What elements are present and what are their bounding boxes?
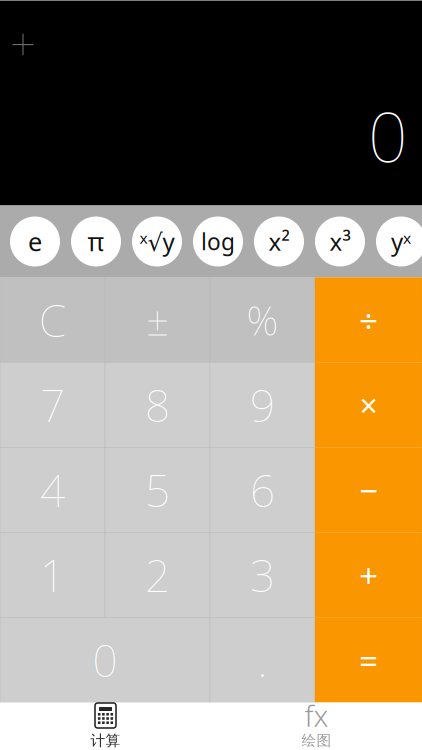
button[interactable]: π [71,216,121,266]
staticText: x² [268,226,289,257]
button[interactable]: log [193,216,243,266]
staticText: + [10,13,36,74]
staticText: ± [146,293,169,346]
staticText: = [359,638,378,682]
staticText: 5 [145,461,170,519]
button[interactable]: x² [254,216,304,266]
button[interactable]: yˣ [376,216,422,266]
button[interactable]: × [315,362,422,447]
staticText: fx [304,696,328,735]
button[interactable]: 6 [210,447,315,532]
button[interactable]: ± [105,277,210,362]
button[interactable]: ÷ [315,277,422,362]
button[interactable]: 计算 [0,702,211,749]
button[interactable]: 3 [210,532,315,617]
staticText: 9 [250,376,275,434]
button[interactable]: 5 [105,447,210,532]
button[interactable]: . [210,617,315,702]
staticText: 0 [368,89,408,181]
staticText: × [359,384,377,426]
staticText: 1 [40,546,65,604]
staticText: ÷ [359,298,378,342]
staticText: 0 [92,631,117,689]
staticText: yˣ [391,226,411,257]
staticText: log [201,226,235,256]
staticText: 4 [40,461,65,519]
button[interactable]: e [10,216,60,266]
button[interactable]: 9 [210,362,315,447]
staticText: 计算 [90,731,120,749]
button[interactable]: 7 [0,362,105,447]
staticText: x³ [329,226,350,257]
button[interactable]: − [315,447,422,532]
button[interactable]: % [210,277,315,362]
button[interactable]: 0 [0,617,210,702]
staticText: 绘图 [301,731,331,749]
staticText: ˣ√y [139,226,174,257]
staticText: 7 [40,376,65,434]
staticText: + [359,553,378,597]
staticText: e [28,225,42,258]
staticText: % [246,293,278,346]
staticText: 3 [250,546,275,604]
staticText: 2 [145,546,170,604]
staticText: − [359,468,378,512]
button[interactable]: fx [211,702,422,749]
staticText: . [257,631,267,689]
button[interactable]: C [0,277,105,362]
button[interactable]: 4 [0,447,105,532]
staticText: C [39,291,66,349]
button[interactable]: Add to history [0,20,46,66]
staticText: 8 [145,376,170,434]
button[interactable]: 2 [105,532,210,617]
button[interactable]: ˣ√y [132,216,182,266]
button[interactable]: 8 [105,362,210,447]
staticText: 6 [250,461,275,519]
staticText: π [87,225,104,258]
button[interactable]: x³ [315,216,365,266]
button[interactable]: + [315,532,422,617]
button[interactable]: = [315,617,422,702]
button[interactable]: 1 [0,532,105,617]
